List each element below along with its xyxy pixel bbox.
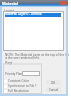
button[interactable] xyxy=(3,11,64,51)
staticText: Flags xyxy=(5,61,13,65)
button[interactable]: Full Resolution xyxy=(4,89,36,94)
button[interactable] xyxy=(22,71,40,76)
button[interactable] xyxy=(5,13,61,17)
staticText: Cancel xyxy=(49,88,59,92)
button[interactable]: Close xyxy=(60,1,67,5)
staticText: Material Layer 0 - Default xyxy=(5,12,42,16)
staticText: Full Resolution xyxy=(8,89,29,93)
staticText: Constant Color xyxy=(8,79,30,83)
staticText: Material xyxy=(2,1,19,6)
staticText: Synchronize to File 1 xyxy=(8,84,37,88)
staticText: Priority Plane: xyxy=(5,72,25,76)
staticText: NOTE: The Material Layer at the top of t… xyxy=(5,53,69,57)
button[interactable]: OK xyxy=(46,80,61,85)
button[interactable]: Cancel xyxy=(46,87,61,92)
button[interactable]: Synchronize to File 1 xyxy=(4,84,36,89)
button[interactable]: Constant Color xyxy=(4,79,36,84)
staticText: is the one rendered first. xyxy=(5,56,40,60)
staticText: Layers xyxy=(4,8,15,13)
staticText: OK xyxy=(51,81,56,85)
